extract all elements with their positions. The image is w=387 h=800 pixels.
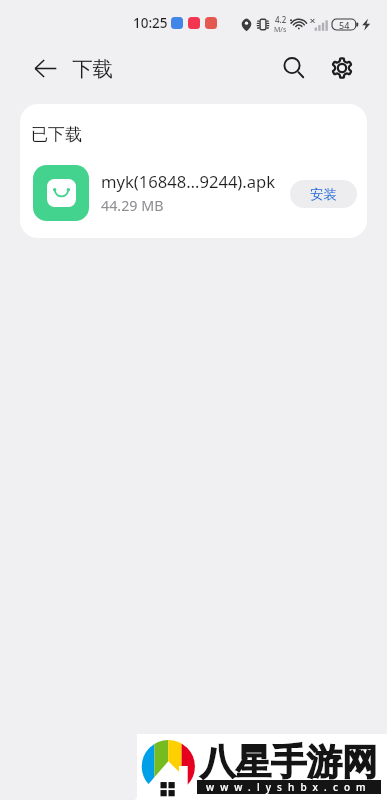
staticText: myk(16848…9244).apk [101, 170, 276, 193]
staticText: 4.2 [275, 14, 287, 25]
staticText: 安装 [310, 186, 337, 203]
button[interactable]: Back [23, 46, 67, 90]
button[interactable]: myk(16848…9244).apk [20, 156, 367, 230]
staticText: 10:25 [133, 14, 168, 32]
staticText: 八星手游网 [200, 740, 378, 785]
button[interactable]: 安装 [290, 180, 357, 208]
staticText: 44.29 MB [101, 196, 164, 215]
button[interactable]: Search [274, 48, 314, 88]
staticText: 下载 [72, 56, 113, 82]
staticText: 已下载 [31, 124, 82, 145]
staticText: M/s [274, 25, 287, 35]
button[interactable]: Settings [322, 48, 362, 88]
staticText: 54 [339, 19, 350, 31]
staticText: www.lyshbx.com [206, 780, 372, 794]
